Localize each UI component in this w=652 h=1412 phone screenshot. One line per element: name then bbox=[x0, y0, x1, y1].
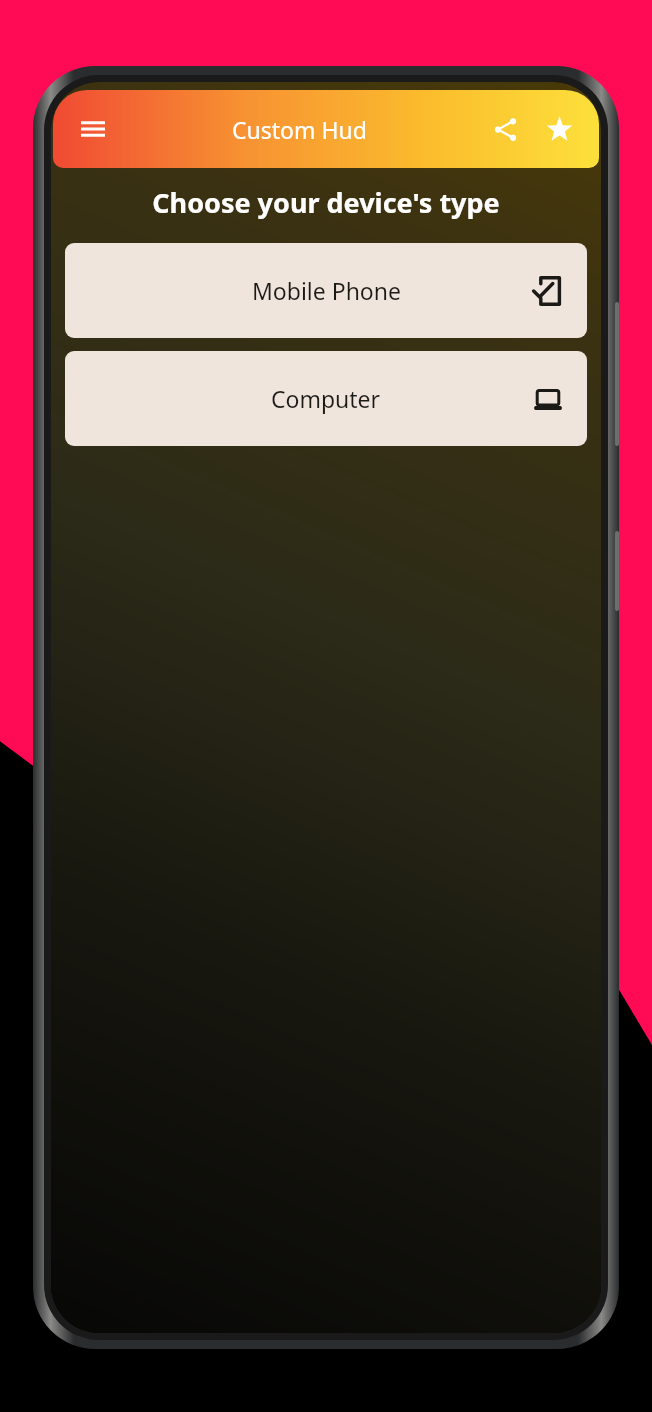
button[interactable]: Favorite bbox=[537, 107, 581, 151]
button[interactable]: Mobile Phone bbox=[65, 243, 587, 338]
button[interactable]: Share bbox=[483, 107, 527, 151]
staticText: Mobile Phone bbox=[252, 275, 401, 306]
button[interactable]: Computer bbox=[65, 351, 587, 446]
staticText: Choose your device's type bbox=[63, 184, 589, 221]
staticText: Computer bbox=[271, 383, 381, 414]
staticText: Custom Hud bbox=[232, 114, 367, 145]
button[interactable]: Open navigation menu bbox=[71, 107, 115, 151]
